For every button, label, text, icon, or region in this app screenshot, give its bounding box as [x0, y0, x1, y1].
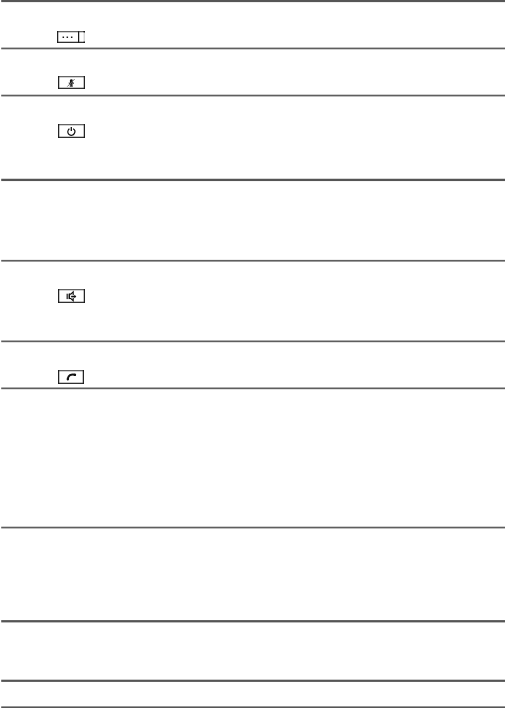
- button[interactable]: Speaker: [58, 289, 85, 303]
- button[interactable]: Mute microphone: [58, 76, 85, 89]
- button[interactable]: More options: [57, 31, 85, 43]
- button[interactable]: Power: [58, 124, 85, 138]
- button[interactable]: Call: [58, 370, 84, 384]
